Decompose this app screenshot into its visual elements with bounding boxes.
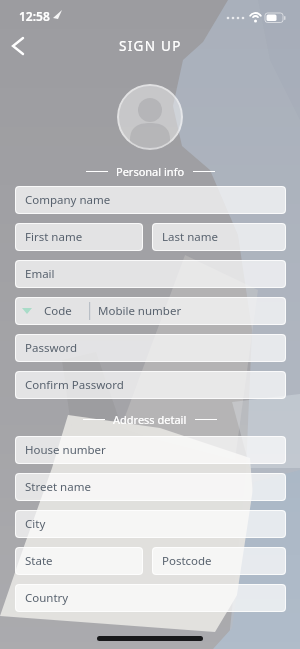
staticText: SIGN UP [119,37,182,55]
staticText: Password [25,340,78,356]
button[interactable]: Company name [15,186,286,214]
staticText: Postcode [162,553,212,569]
staticText: First name [25,229,83,245]
staticText: Mobile number [98,303,182,319]
button[interactable]: State [15,547,143,575]
button[interactable]: Country [15,584,286,612]
button[interactable]: First name [15,223,143,251]
staticText: Company name [25,192,111,208]
staticText: Address detail [113,412,187,427]
button[interactable]: Street name [15,473,286,501]
staticText: Code [44,303,72,319]
staticText: Street name [25,479,91,495]
button[interactable]: House number [15,436,286,464]
staticText: Last name [162,229,218,245]
button[interactable]: Password [15,334,286,362]
button[interactable]: Postcode [152,547,286,575]
staticText: City [25,516,46,532]
button[interactable] [5,34,33,58]
staticText: House number [25,442,106,458]
staticText: 12:58 [19,8,50,24]
button[interactable]: Code [15,297,286,325]
staticText: Email [25,266,55,282]
staticText: Country [25,590,69,606]
button[interactable] [117,84,183,150]
staticText: Personal info [116,164,185,179]
button[interactable]: Confirm Password [15,371,286,399]
staticText: Confirm Password [25,377,124,393]
button[interactable]: Last name [152,223,286,251]
button[interactable]: City [15,510,286,538]
button[interactable]: Email [15,260,286,288]
staticText: State [25,553,53,569]
